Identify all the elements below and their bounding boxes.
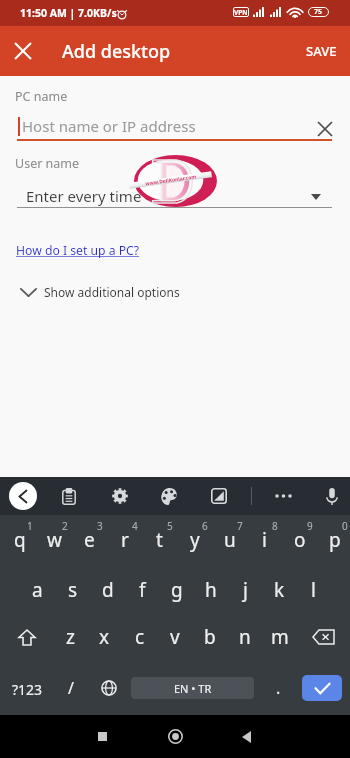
button[interactable]: Enter xyxy=(302,675,342,701)
button[interactable]: m xyxy=(262,613,297,661)
button[interactable]: b xyxy=(192,613,227,661)
staticText: SAVE xyxy=(306,42,337,60)
staticText: EN • TR xyxy=(174,681,212,696)
button[interactable]: Theme xyxy=(152,479,186,513)
button[interactable]: 5 xyxy=(140,515,175,567)
button[interactable]: j xyxy=(228,567,262,613)
button[interactable]: Voice input xyxy=(315,479,349,513)
staticText: p xyxy=(329,527,341,553)
button[interactable]: 7 xyxy=(210,515,245,567)
button[interactable]: c xyxy=(122,613,157,661)
staticText: 8 xyxy=(272,519,278,533)
staticText: s xyxy=(68,577,78,603)
staticText: j xyxy=(243,577,248,603)
staticText: o xyxy=(294,527,306,553)
button[interactable]: d xyxy=(90,567,125,613)
staticText: a xyxy=(32,577,43,603)
staticText: y xyxy=(190,527,200,553)
button[interactable]: 1 xyxy=(0,515,35,567)
staticText: h xyxy=(205,577,217,603)
button[interactable]: k xyxy=(262,567,296,613)
button[interactable]: g xyxy=(160,567,194,613)
staticText: Add desktop xyxy=(62,39,171,64)
button[interactable]: Keyboard settings xyxy=(103,479,137,513)
button[interactable]: Shift xyxy=(0,613,53,661)
button[interactable]: 6 xyxy=(175,515,210,567)
button[interactable]: Close xyxy=(0,26,46,76)
staticText: l xyxy=(311,577,316,603)
staticText: e xyxy=(84,527,95,553)
button[interactable]: More options xyxy=(266,479,300,513)
staticText: q xyxy=(14,527,26,553)
staticText: ?123 xyxy=(12,680,43,699)
button[interactable]: Show additional options xyxy=(0,279,350,305)
staticText: PC name xyxy=(15,88,68,105)
staticText: i xyxy=(262,527,267,553)
staticText: User name xyxy=(15,155,80,172)
staticText: r xyxy=(121,527,129,553)
button[interactable]: 2 xyxy=(35,515,70,567)
staticText: Show additional options xyxy=(44,284,180,300)
button[interactable]: f xyxy=(125,567,160,613)
staticText: www.DeliKonlar.com xyxy=(145,173,197,186)
staticText: 4 xyxy=(132,519,138,533)
staticText: 7 xyxy=(237,519,243,533)
staticText: 5 xyxy=(167,519,173,533)
staticText: m xyxy=(271,624,289,650)
staticText: x xyxy=(99,624,110,650)
button[interactable]: SAVE xyxy=(293,26,350,76)
button[interactable]: l xyxy=(296,567,330,613)
staticText: 6 xyxy=(202,519,208,533)
staticText: d xyxy=(102,577,114,603)
button[interactable]: Change language xyxy=(87,661,131,715)
button[interactable]: h xyxy=(194,567,228,613)
staticText: How do I set up a PC? xyxy=(16,242,140,259)
button[interactable]: Back xyxy=(9,482,37,510)
staticText: n xyxy=(239,624,251,650)
button[interactable]: 0 xyxy=(315,515,350,567)
button[interactable]: Clear text xyxy=(314,118,336,140)
staticText: 9 xyxy=(307,519,313,533)
staticText: 2 xyxy=(62,519,68,533)
button[interactable]: x xyxy=(87,613,122,661)
button[interactable]: Clipboard xyxy=(52,479,86,513)
button[interactable]: 9 xyxy=(280,515,315,567)
button[interactable]: Backspace xyxy=(297,613,350,661)
staticText: u xyxy=(224,527,236,553)
staticText: Host name or IP address xyxy=(22,116,196,136)
staticText: b xyxy=(204,624,216,650)
button[interactable]: ?123 xyxy=(0,661,55,715)
button[interactable]: Recent apps xyxy=(80,715,124,758)
button[interactable]: / xyxy=(55,661,87,715)
staticText: 0 xyxy=(342,519,348,533)
staticText: Enter every time xyxy=(26,186,142,206)
button[interactable]: 3 xyxy=(70,515,105,567)
button[interactable]: How do I set up a PC? xyxy=(16,242,140,259)
button[interactable]: v xyxy=(157,613,192,661)
button[interactable]: Resize keyboard xyxy=(202,479,236,513)
button[interactable]: Back xyxy=(224,715,268,758)
button[interactable]: 4 xyxy=(105,515,140,567)
button[interactable]: Open dropdown xyxy=(305,186,327,208)
button[interactable]: n xyxy=(227,613,262,661)
button[interactable]: EN • TR xyxy=(131,677,254,699)
button[interactable]: s xyxy=(55,567,90,613)
staticText: / xyxy=(68,677,74,699)
staticText: 75 xyxy=(314,7,323,17)
staticText: 11:50 AM | 7.0KB/s xyxy=(20,6,117,20)
staticText: . xyxy=(276,677,281,699)
staticText: f xyxy=(139,577,146,603)
staticText: 3 xyxy=(97,519,103,533)
staticText: 1 xyxy=(27,519,33,533)
staticText: v xyxy=(170,624,180,650)
button[interactable]: a xyxy=(20,567,55,613)
button[interactable]: 8 xyxy=(245,515,280,567)
button[interactable]: Home xyxy=(153,715,197,758)
button[interactable]: z xyxy=(53,613,87,661)
staticText: w xyxy=(47,527,62,553)
staticText: g xyxy=(171,577,183,603)
button[interactable]: . xyxy=(254,661,302,715)
staticText: t xyxy=(156,527,163,553)
staticText: c xyxy=(135,624,145,650)
staticText: k xyxy=(274,577,285,603)
